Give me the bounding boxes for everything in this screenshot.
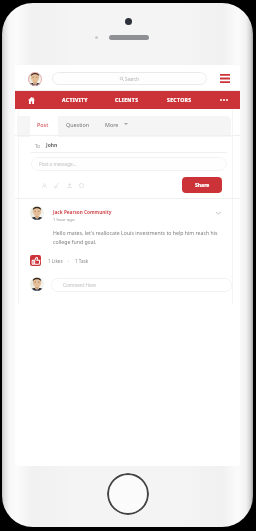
staticText: Post a message... [39,161,77,167]
button[interactable]: Question [63,118,93,130]
staticText: · [68,258,70,264]
staticText: Search [125,76,139,82]
staticText: Jack Pearson Community [53,209,112,215]
staticText: ACTIVITY [62,97,88,104]
button[interactable]: Share [182,177,222,193]
button[interactable]: 1 Task [75,258,89,264]
staticText: 1 hour ago [53,217,75,223]
button[interactable]: 1 Likes [48,258,63,264]
button[interactable]: ACTIVITY [52,91,98,109]
staticText: To [35,143,40,149]
button[interactable]: More options [215,91,233,109]
staticText: Hello mates, let's reallocate Louis inve… [53,229,219,246]
staticText: John [46,142,58,149]
button[interactable]: CLIENTS [104,91,150,109]
button[interactable]: Upload [65,181,74,190]
button[interactable]: Attach file [52,181,61,190]
staticText: CLIENTS [115,97,139,104]
button[interactable]: Home button [107,473,149,515]
button[interactable]: Menu [218,71,231,85]
staticText: Comment Here [63,282,96,288]
staticText: 1 Likes [48,258,63,264]
button[interactable]: Post [31,118,54,130]
staticText: More [105,121,119,128]
button[interactable]: Emoji [77,181,86,190]
button[interactable]: Format text [40,181,49,190]
staticText: SECTORS [167,97,192,104]
button[interactable]: More [105,118,128,130]
button[interactable]: Comment Here [51,278,232,292]
staticText: 1 Task [75,258,89,264]
staticText: Question [66,121,90,128]
staticText: Share [195,182,210,189]
button[interactable]: Expand post [214,208,223,217]
button[interactable]: SECTORS [156,91,202,109]
button[interactable]: Post a message... [31,157,227,171]
staticText: Post [37,121,49,128]
button[interactable]: Like [30,255,41,266]
button[interactable]: Search [52,72,207,85]
button[interactable]: Home [22,91,40,109]
